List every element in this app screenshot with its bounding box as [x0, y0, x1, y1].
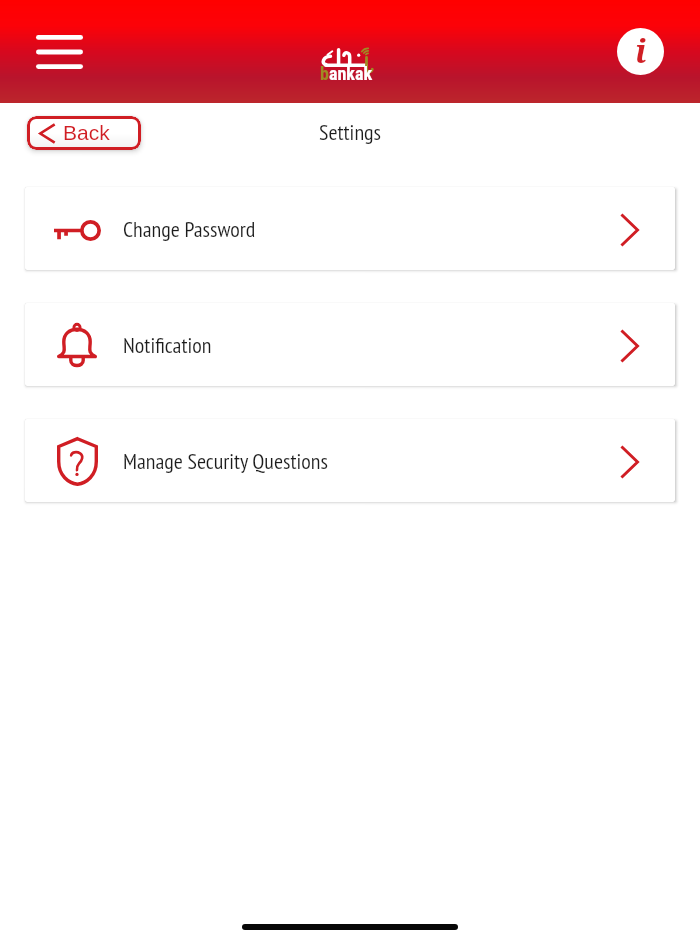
staticText: b: [320, 63, 329, 84]
staticText: ankak: [329, 63, 373, 84]
button[interactable]: Notification: [25, 303, 675, 386]
button[interactable]: Information: [617, 28, 664, 75]
staticText: Back: [63, 121, 110, 144]
button[interactable]: Manage Security Questions: [25, 419, 675, 502]
staticText: i: [635, 29, 647, 73]
button[interactable]: Menu: [22, 21, 97, 83]
other: bankak: [320, 48, 380, 81]
button[interactable]: Change Password: [25, 187, 675, 270]
staticText: Manage Security Questions: [123, 447, 328, 475]
staticText: Notification: [123, 331, 212, 359]
staticText: Settings: [319, 118, 381, 146]
staticText: Change Password: [123, 215, 256, 243]
button[interactable]: Back: [27, 116, 141, 150]
